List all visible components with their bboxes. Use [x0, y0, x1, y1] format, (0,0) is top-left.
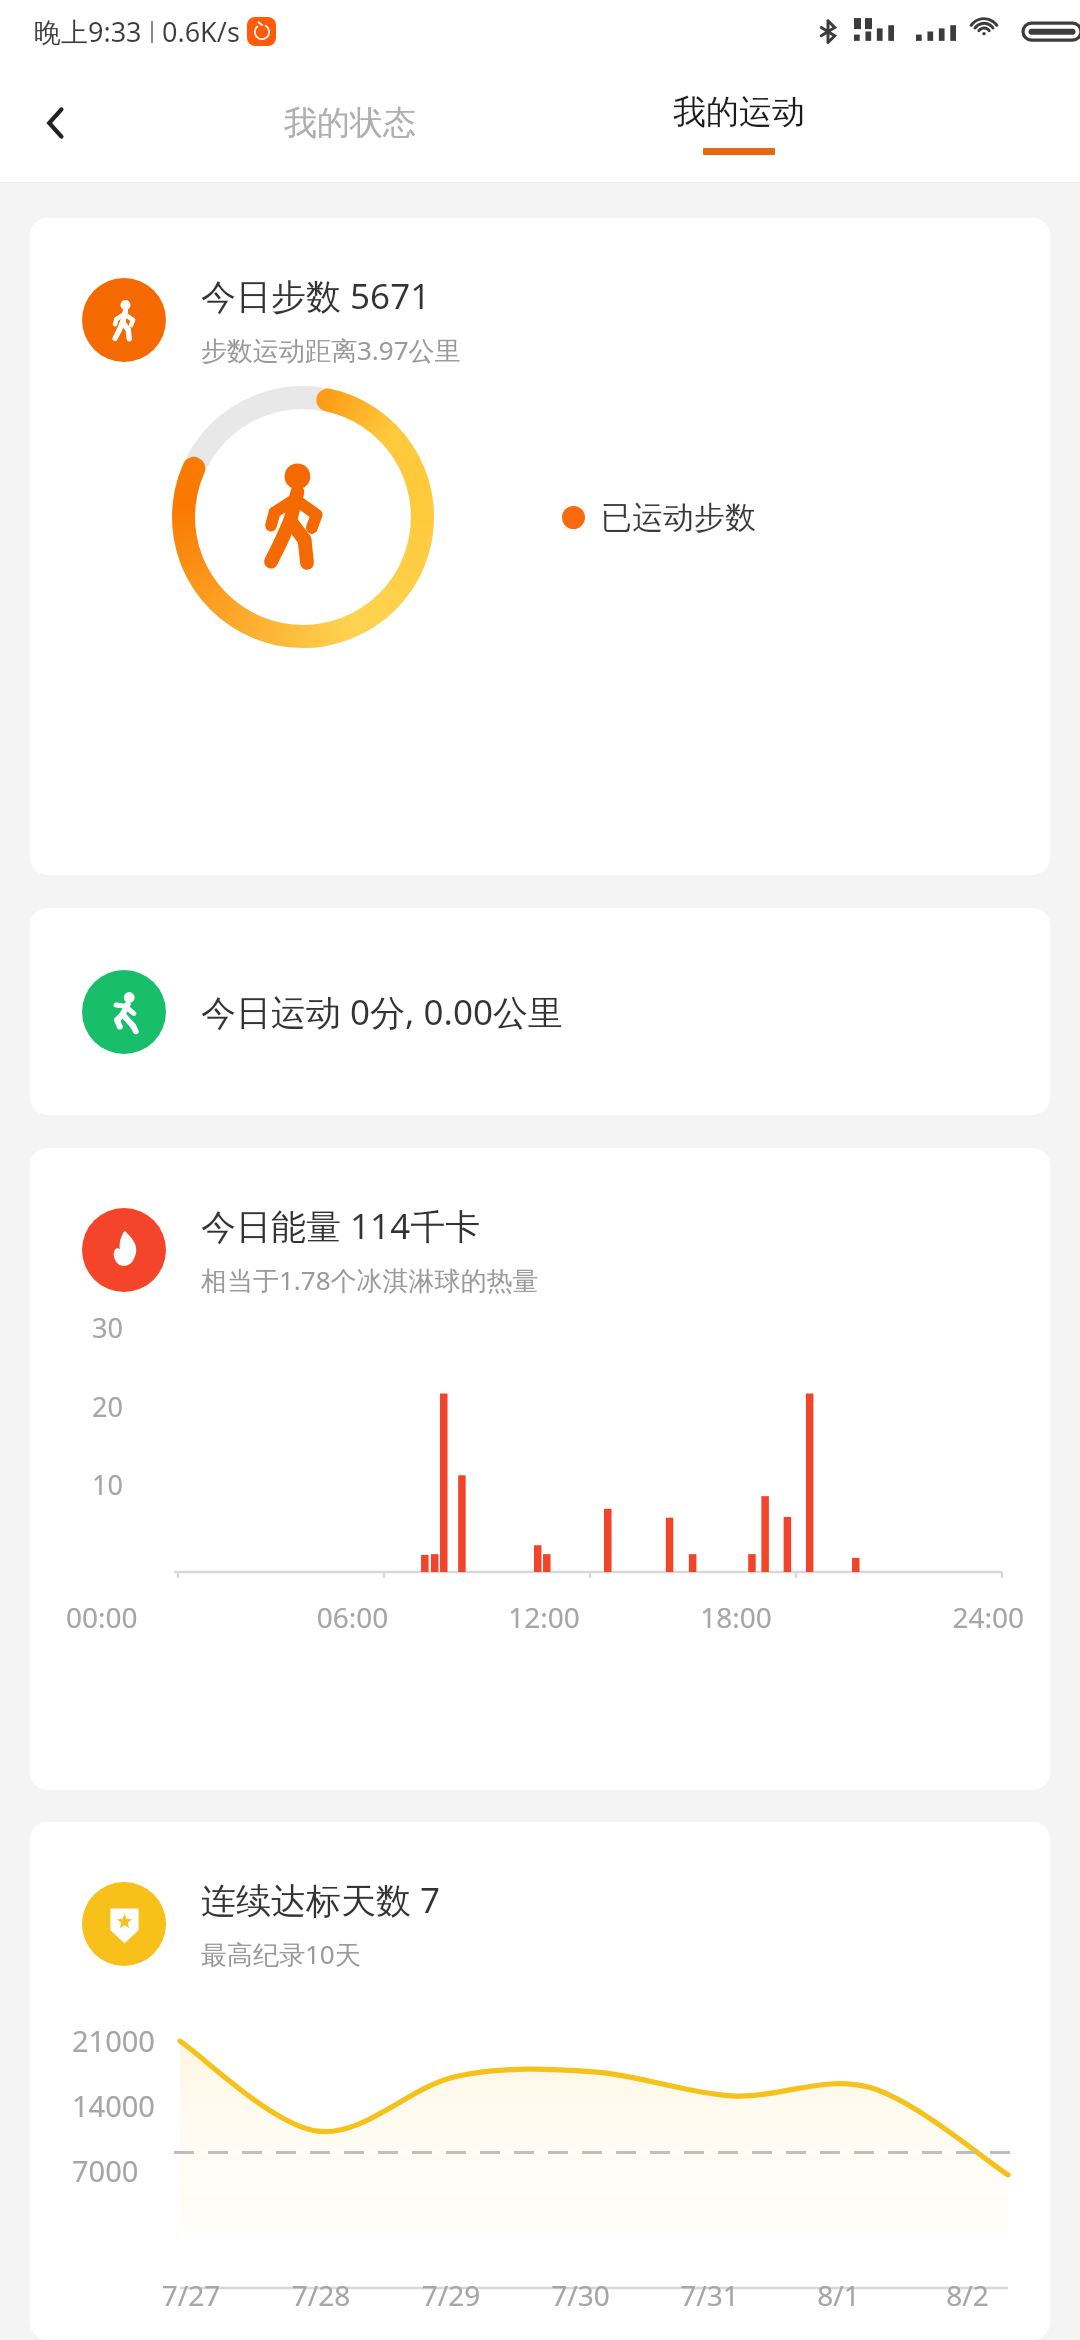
staticText: 12:00: [448, 1598, 640, 1636]
staticText: 步数运动距离3.97公里: [201, 332, 461, 368]
staticText: 相当于1.78个冰淇淋球的热量: [201, 1262, 539, 1298]
staticText: 7/27: [126, 2276, 256, 2314]
button[interactable]: Back: [18, 85, 94, 161]
staticText: 00:00: [66, 1598, 257, 1636]
staticText: 我的运动: [673, 91, 805, 133]
staticText: 21000: [72, 2021, 155, 2060]
button[interactable]: 我的运动: [617, 62, 861, 183]
staticText: 7/29: [386, 2276, 516, 2314]
staticText: 今日步数 5671: [201, 272, 431, 320]
staticText: 晚上9:33: [34, 13, 142, 50]
staticText: 24:00: [832, 1598, 1024, 1636]
staticText: 已运动步数: [601, 498, 756, 537]
staticText: 今日能量 114千卡: [201, 1202, 481, 1250]
staticText: 最高纪录10天: [201, 1936, 361, 1972]
staticText: 0.6K/s: [162, 13, 240, 50]
button[interactable]: 今日步数 5671: [30, 218, 1050, 875]
staticText: 连续达标天数 7: [201, 1876, 441, 1924]
staticText: 7/28: [256, 2276, 386, 2314]
button[interactable]: 连续达标天数 7: [30, 1822, 1050, 2340]
staticText: 7000: [72, 2151, 139, 2190]
staticText: 10: [92, 1466, 123, 1503]
staticText: 20: [92, 1388, 123, 1425]
button[interactable]: 今日能量 114千卡: [30, 1148, 1050, 1790]
staticText: 30: [92, 1309, 123, 1346]
staticText: 14000: [72, 2086, 155, 2125]
staticText: 我的状态: [284, 102, 416, 144]
staticText: 7/30: [516, 2276, 645, 2314]
staticText: 7/31: [645, 2276, 774, 2314]
button[interactable]: 今日运动 0分, 0.00公里: [30, 908, 1050, 1115]
staticText: 8/1: [774, 2276, 903, 2314]
staticText: 今日运动 0分, 0.00公里: [201, 988, 564, 1036]
staticText: 8/2: [903, 2276, 1032, 2314]
button[interactable]: 我的状态: [228, 62, 472, 183]
staticText: 06:00: [257, 1598, 448, 1636]
staticText: 18:00: [640, 1598, 832, 1636]
